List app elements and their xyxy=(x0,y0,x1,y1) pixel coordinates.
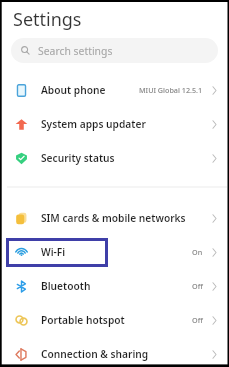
staticText: Off xyxy=(192,281,203,291)
staticText: On xyxy=(192,247,203,257)
button[interactable]: SIM cards & mobile networks xyxy=(2,201,227,235)
button[interactable]: Security status xyxy=(2,141,227,175)
button[interactable]: System apps updater xyxy=(2,107,227,141)
button[interactable]: Search settings xyxy=(11,38,218,63)
staticText: Bluetooth xyxy=(41,279,91,293)
staticText: Off xyxy=(192,315,203,325)
button[interactable]: Bluetooth xyxy=(2,269,227,303)
button[interactable]: About phone xyxy=(2,73,227,107)
staticText: Wi-Fi xyxy=(41,245,66,259)
staticText: MIUI Global 12.5.1 xyxy=(139,85,203,95)
staticText: Search settings xyxy=(38,44,113,58)
staticText: Settings xyxy=(13,7,82,32)
staticText: Connection & sharing xyxy=(41,347,149,361)
button[interactable]: Portable hotspot xyxy=(2,303,227,337)
staticText: System apps updater xyxy=(41,117,146,131)
staticText: About phone xyxy=(41,83,106,97)
staticText: Security status xyxy=(41,151,115,165)
button[interactable]: Connection & sharing xyxy=(2,337,227,367)
button[interactable]: Wi-Fi xyxy=(2,235,227,269)
staticText: Portable hotspot xyxy=(41,313,125,327)
staticText: SIM cards & mobile networks xyxy=(41,211,186,225)
